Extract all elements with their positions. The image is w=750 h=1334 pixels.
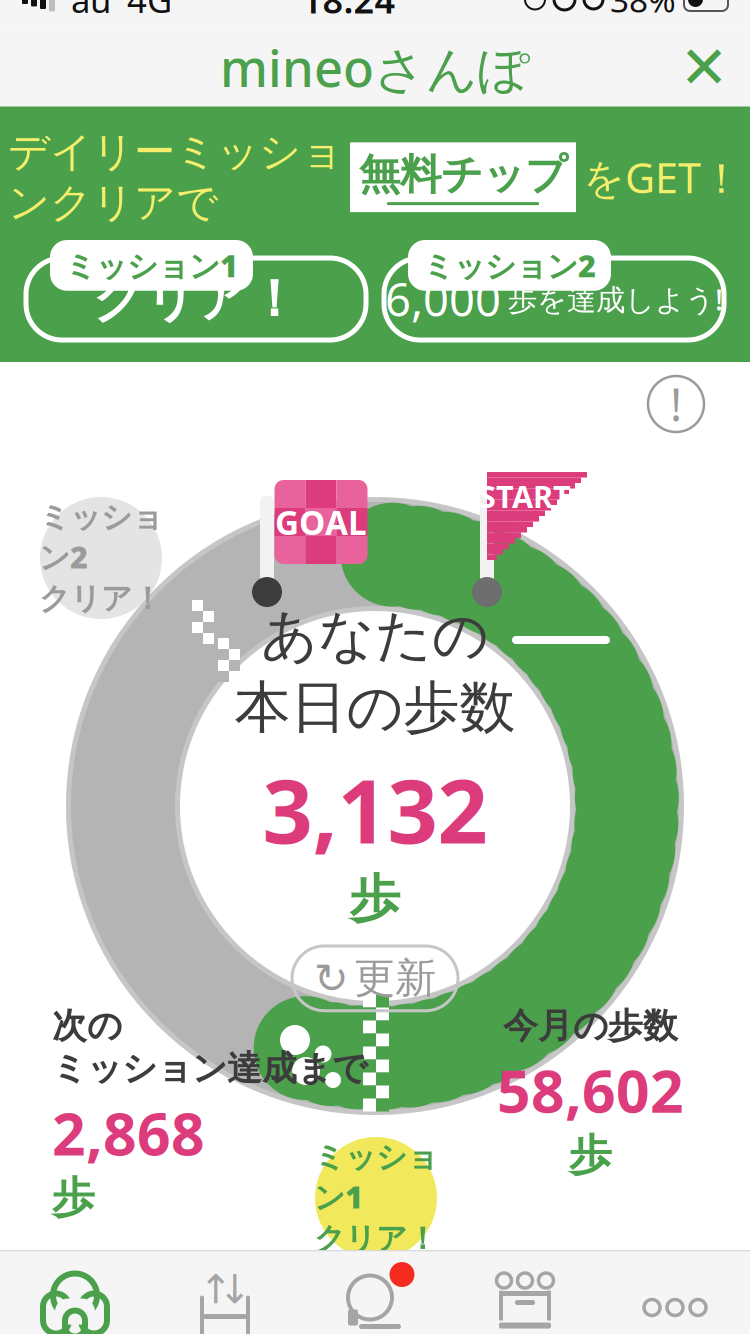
- button[interactable]: Ranking: [450, 1251, 600, 1334]
- staticText: 歩を達成しよう!: [508, 279, 723, 318]
- staticText: 今月の歩数: [503, 1004, 678, 1047]
- staticText: ↻: [314, 955, 349, 1002]
- staticText: 58,602: [497, 1051, 684, 1129]
- staticText: 無料チップ: [359, 149, 567, 200]
- staticText: ✕: [679, 34, 728, 101]
- staticText: ↑: [199, 1267, 233, 1312]
- staticText: ミッション達成まで: [52, 1047, 367, 1090]
- staticText: あなたの: [261, 601, 489, 670]
- staticText: GOAL: [275, 500, 367, 544]
- staticText: 3,132: [262, 751, 487, 868]
- staticText: ミッション2: [423, 245, 596, 286]
- staticText: ミッション1: [314, 1138, 438, 1217]
- staticText: au: [71, 0, 111, 22]
- button[interactable]: Home: [0, 1251, 150, 1334]
- staticText: 18:24: [301, 0, 395, 23]
- staticText: 4G: [127, 0, 172, 22]
- staticText: をGET！: [583, 150, 742, 205]
- staticText: 次の: [52, 1004, 122, 1047]
- staticText: !: [670, 374, 682, 434]
- button[interactable]: Information: [648, 376, 704, 432]
- button[interactable]: 6,000: [384, 240, 724, 340]
- staticText: 歩: [349, 868, 400, 930]
- staticText: START: [479, 476, 571, 516]
- staticText: 更新: [354, 953, 436, 1004]
- button[interactable]: Community: [300, 1251, 450, 1334]
- staticText: 歩: [569, 1129, 612, 1181]
- button[interactable]: Close: [658, 28, 750, 106]
- staticText: クリア！: [92, 268, 299, 330]
- staticText: ミッション2: [39, 498, 163, 577]
- button[interactable]: ↻: [292, 946, 458, 1011]
- staticText: 本日の歩数: [234, 673, 515, 742]
- staticText: 歩: [52, 1172, 95, 1224]
- staticText: クリア！: [314, 1220, 438, 1258]
- staticText: 6,000: [385, 269, 501, 329]
- staticText: ↓: [218, 1267, 252, 1312]
- button[interactable]: 無料チップ: [350, 142, 576, 212]
- button[interactable]: Data usage: [150, 1251, 300, 1334]
- button[interactable]: クリア！: [26, 240, 366, 340]
- button[interactable]: More: [600, 1251, 750, 1334]
- staticText: 38%: [610, 0, 676, 22]
- staticText: デイリーミッションクリアで: [8, 126, 343, 228]
- staticText: ミッション1: [65, 245, 238, 286]
- staticText: mineoさんぽ: [220, 34, 530, 101]
- staticText: クリア！: [39, 580, 163, 618]
- staticText: 2,868: [52, 1094, 205, 1172]
